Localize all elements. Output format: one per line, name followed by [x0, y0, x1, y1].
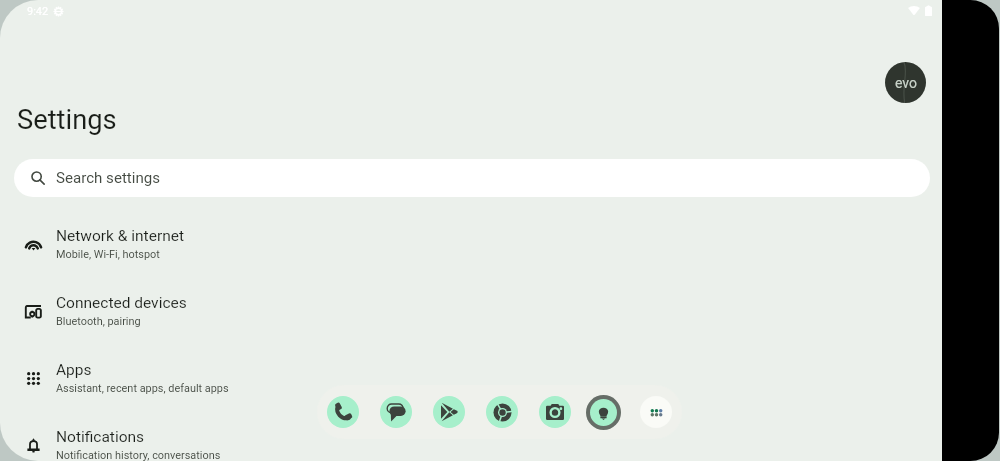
- staticText: 9:42: [27, 5, 49, 18]
- staticText: Notification history, conversations: [56, 449, 221, 461]
- button[interactable]: Phone: [327, 396, 359, 428]
- button[interactable]: All apps: [640, 396, 672, 428]
- staticText: Bluetooth, pairing: [56, 315, 141, 328]
- button[interactable]: Play Store: [433, 396, 465, 428]
- button[interactable]: Account: [885, 62, 926, 103]
- staticText: Connected devices: [56, 294, 187, 312]
- staticText: Assistant, recent apps, default apps: [56, 382, 229, 395]
- staticText: Network & internet: [56, 227, 184, 245]
- button[interactable]: Chrome: [486, 396, 518, 428]
- button[interactable]: Apps: [0, 345, 942, 412]
- button[interactable]: Messages: [380, 396, 412, 428]
- staticText: Settings: [17, 104, 117, 136]
- button[interactable]: Assistant: [586, 395, 621, 430]
- staticText: evo: [895, 75, 917, 91]
- staticText: Notifications: [56, 428, 145, 446]
- button[interactable]: Network & internet: [0, 211, 942, 278]
- staticText: Apps: [56, 361, 92, 379]
- button[interactable]: Search settings: [14, 159, 930, 197]
- button[interactable]: Camera: [539, 396, 571, 428]
- staticText: Mobile, Wi-Fi, hotspot: [56, 248, 160, 261]
- staticText: Search settings: [56, 169, 161, 187]
- button[interactable]: Notifications: [0, 412, 942, 461]
- button[interactable]: Connected devices: [0, 278, 942, 345]
